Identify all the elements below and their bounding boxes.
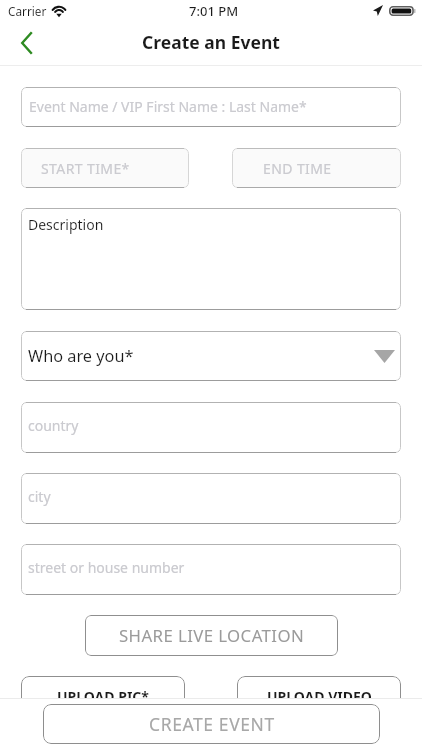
staticText: END TIME [263, 159, 332, 178]
staticText: START TIME* [41, 159, 130, 178]
staticText: UPLOAD PIC* [57, 687, 149, 706]
button[interactable]: START TIME* [21, 148, 189, 188]
staticText: Create an Event [142, 30, 280, 54]
staticText: city [28, 487, 51, 506]
staticText: Event Name / VIP First Name : Last Name* [29, 97, 307, 116]
button[interactable]: Back [0, 22, 46, 66]
button[interactable]: city [21, 473, 401, 524]
staticText: country [28, 416, 79, 435]
button[interactable]: Description [21, 208, 401, 310]
button[interactable]: country [21, 402, 401, 453]
button[interactable]: Who are you* [21, 331, 401, 381]
staticText: UPLOAD VIDEO [267, 687, 372, 706]
staticText: Carrier [8, 3, 47, 19]
staticText: SHARE LIVE LOCATION [119, 624, 305, 647]
button[interactable]: END TIME [232, 148, 401, 188]
button[interactable]: UPLOAD VIDEO [237, 676, 401, 723]
button[interactable]: Event Name / VIP First Name : Last Name* [21, 87, 401, 127]
button[interactable]: street or house number [21, 544, 401, 595]
staticText: Who are you* [28, 345, 134, 367]
staticText: 7:01 PM [189, 2, 239, 20]
staticText: street or house number [28, 558, 185, 577]
staticText: CREATE EVENT [149, 712, 275, 736]
button[interactable]: UPLOAD PIC* [21, 676, 185, 723]
button[interactable]: SHARE LIVE LOCATION [85, 615, 338, 656]
button[interactable]: CREATE EVENT [43, 704, 380, 744]
staticText: Description [28, 215, 104, 234]
